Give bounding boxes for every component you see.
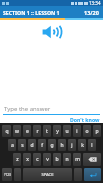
button[interactable]: u — [63, 125, 71, 137]
button[interactable]: SPACE — [23, 168, 72, 181]
button[interactable]: v — [43, 153, 51, 166]
staticText: n — [65, 156, 69, 163]
button[interactable]: Play audio — [41, 24, 63, 40]
staticText: m — [75, 156, 80, 163]
button[interactable]: s — [18, 139, 26, 151]
button[interactable]: f — [38, 139, 46, 151]
button[interactable]: c — [33, 153, 41, 166]
button[interactable] — [83, 153, 101, 166]
staticText: x — [26, 156, 29, 163]
staticText: ?123 — [4, 173, 11, 177]
button[interactable]: z — [13, 153, 21, 166]
staticText: g — [50, 142, 54, 149]
staticText: i — [76, 128, 78, 135]
button[interactable]: t — [43, 125, 51, 137]
staticText: Type the answer — [4, 105, 51, 113]
staticText: 13:34 — [89, 0, 101, 6]
staticText: q — [5, 128, 9, 135]
staticText: p — [95, 128, 99, 135]
staticText: l — [91, 142, 93, 149]
button[interactable]: w — [13, 125, 21, 137]
button[interactable]: p — [93, 125, 101, 137]
button[interactable]: l — [88, 139, 96, 151]
button[interactable]: y — [53, 125, 61, 137]
staticText: o — [85, 128, 89, 135]
button[interactable]: SECTION 1 :: LESSON 1 — [0, 6, 103, 18]
staticText: k — [81, 142, 84, 149]
button[interactable]: o — [83, 125, 91, 137]
button[interactable]: b — [53, 153, 61, 166]
button[interactable]: h — [58, 139, 66, 151]
staticText: h — [60, 142, 64, 149]
staticText: d — [30, 142, 34, 149]
button[interactable]: i — [73, 125, 81, 137]
button[interactable]: g — [48, 139, 56, 151]
staticText: Don't know — [70, 116, 100, 123]
button[interactable]: k — [78, 139, 86, 151]
staticText: b — [55, 156, 59, 163]
staticText: j — [71, 142, 73, 149]
staticText: t — [46, 128, 48, 135]
staticText: SECTION 1 :: LESSON 1 — [3, 9, 60, 16]
button[interactable]: x — [23, 153, 31, 166]
staticText: a — [11, 142, 14, 149]
staticText: v — [46, 156, 49, 163]
staticText: u — [65, 128, 69, 135]
button[interactable]: a — [8, 139, 16, 151]
button[interactable]: r — [33, 125, 41, 137]
button[interactable]: q — [2, 125, 11, 137]
staticText: r — [36, 128, 39, 135]
button[interactable] — [74, 168, 82, 181]
staticText: w — [15, 128, 19, 135]
staticText: s — [21, 142, 24, 149]
staticText: e — [26, 128, 29, 135]
button[interactable]: m — [73, 153, 81, 166]
button[interactable]: ?123 — [2, 168, 12, 181]
staticText: SPACE — [41, 172, 54, 178]
button[interactable]: Don't know — [70, 116, 100, 123]
button[interactable]: d — [28, 139, 36, 151]
button[interactable]: n — [63, 153, 71, 166]
button[interactable]: e — [23, 125, 31, 137]
staticText: y — [56, 128, 59, 135]
button[interactable] — [14, 168, 21, 181]
staticText: c — [36, 156, 39, 163]
button[interactable] — [84, 168, 101, 181]
staticText: 13/20 — [84, 9, 99, 16]
staticText: z — [16, 156, 19, 163]
staticText: f — [41, 142, 43, 149]
button[interactable]: j — [68, 139, 76, 151]
